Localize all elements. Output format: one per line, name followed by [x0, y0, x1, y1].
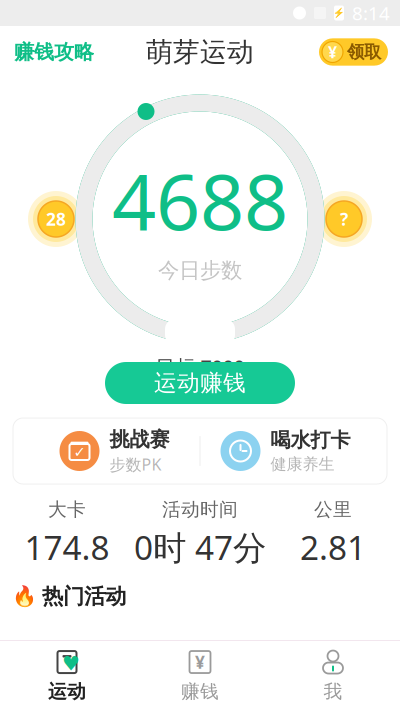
button[interactable]: 喝水打卡: [200, 418, 370, 484]
button[interactable]: 赚钱攻略: [0, 32, 108, 72]
staticText: 运动赚钱: [154, 369, 246, 397]
staticText: 领取: [347, 41, 381, 63]
staticText: ?: [340, 207, 348, 230]
staticText: 目标:7000: [155, 353, 244, 380]
staticText: 公里: [314, 498, 352, 521]
button[interactable]: ♥: [0, 646, 133, 706]
button[interactable]: 我: [266, 646, 399, 706]
button[interactable]: ¥: [319, 38, 388, 66]
staticText: ¥: [328, 41, 337, 63]
staticText: 我: [323, 680, 342, 703]
staticText: 174.8: [24, 525, 109, 569]
staticText: 热门活动: [42, 583, 126, 609]
staticText: 8:14: [352, 1, 390, 25]
staticText: 萌芽运动: [146, 36, 254, 68]
button[interactable]: 运动赚钱: [105, 362, 295, 404]
staticText: 运动: [48, 680, 86, 703]
staticText: 赚钱攻略: [14, 40, 94, 64]
staticText: 🔥: [12, 585, 37, 608]
staticText: 28: [46, 207, 66, 230]
staticText: 步数PK: [109, 454, 161, 475]
staticText: 大卡: [48, 498, 86, 521]
staticText: 2.81: [300, 525, 366, 569]
staticText: 4688: [112, 149, 288, 251]
staticText: ♥: [62, 652, 80, 675]
button[interactable]: ✓: [29, 417, 199, 485]
staticText: 挑战赛: [109, 427, 169, 452]
staticText: 喝水打卡: [270, 428, 350, 452]
staticText: 今日步数: [158, 257, 242, 283]
staticText: 健康养生: [270, 454, 334, 474]
staticText: 赚钱: [181, 680, 219, 703]
staticText: 活动时间: [162, 498, 238, 521]
staticText: 0时 47分: [134, 525, 266, 569]
staticText: ⚡: [333, 8, 345, 18]
staticText: ¥: [195, 650, 205, 673]
button[interactable]: ¥: [133, 646, 266, 706]
staticText: ✓: [73, 444, 85, 460]
